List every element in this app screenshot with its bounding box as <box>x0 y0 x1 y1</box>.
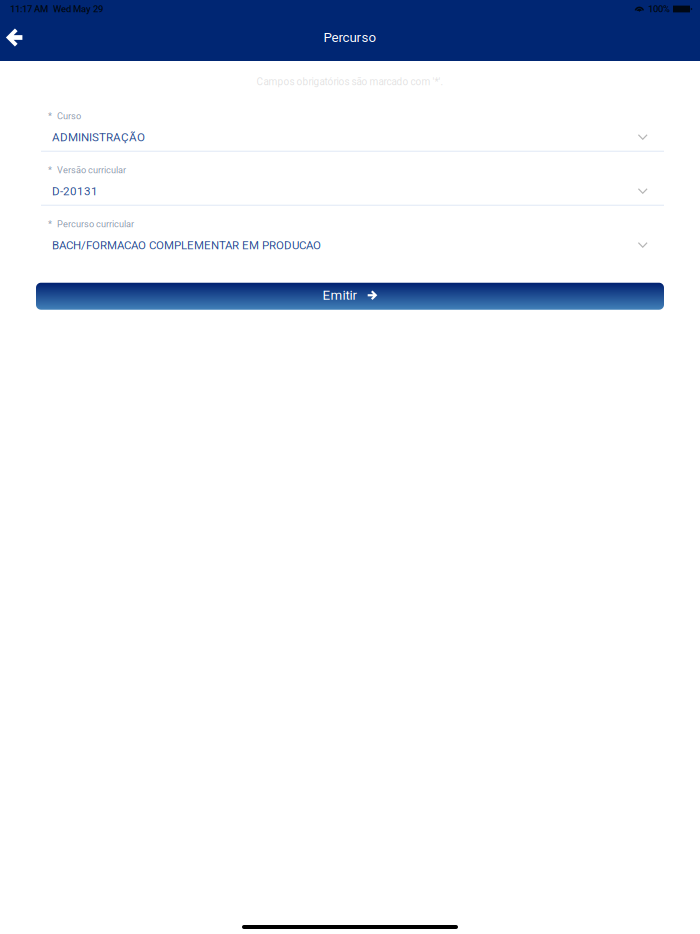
button[interactable]: Back <box>0 19 35 59</box>
staticText: Percurso <box>323 30 376 45</box>
staticText: ADMINISTRAÇÃO <box>52 130 145 144</box>
staticText: Wed May 29 <box>53 3 103 15</box>
staticText: Percurso curricular <box>57 219 134 229</box>
staticText: * <box>48 165 52 175</box>
staticText: Curso <box>57 111 81 121</box>
staticText: * <box>48 111 52 121</box>
staticText: * <box>48 219 52 229</box>
staticText: 100% <box>648 3 670 15</box>
button[interactable]: Emitir <box>36 283 664 310</box>
staticText: BACH/FORMACAO COMPLEMENTAR EM PRODUCAO <box>52 238 321 252</box>
button[interactable]: * <box>36 152 664 206</box>
staticText: 11:17 AM <box>10 3 48 15</box>
button[interactable]: * <box>36 206 664 260</box>
staticText: Emitir <box>322 287 357 303</box>
staticText: Campos obrigatórios são marcado com '*'. <box>256 76 443 88</box>
staticText: D-20131 <box>52 184 98 198</box>
staticText: Versão curricular <box>57 165 126 175</box>
button[interactable]: * <box>36 98 664 152</box>
